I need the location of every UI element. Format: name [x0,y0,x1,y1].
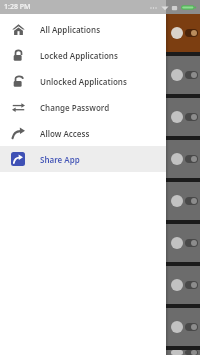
button[interactable]: Toggle lock [0,350,200,355]
other: Share App [11,152,25,166]
button[interactable]: Change Password [0,94,166,120]
staticText: 1:28 PM [4,2,31,12]
staticText: Locked Applications [40,50,118,61]
button[interactable]: Toggle lock [0,56,200,94]
button[interactable]: Allow Access [0,120,166,146]
button[interactable]: Toggle lock [0,182,200,220]
staticText: Unlocked Applications [40,76,127,87]
button[interactable]: Toggle lock [0,224,200,262]
button[interactable]: Toggle lock [0,98,200,136]
button[interactable]: Toggle lock [185,197,198,205]
button[interactable]: Toggle lock [185,155,198,163]
button[interactable]: Toggle lock [185,113,198,121]
button[interactable]: Toggle lock [0,266,200,304]
button[interactable]: Toggle lock [185,29,198,37]
button[interactable]: Toggle lock [185,239,198,247]
button[interactable]: All Applications [0,16,166,42]
button[interactable]: Toggle lock [0,308,200,346]
staticText: Allow Access [40,128,90,139]
button[interactable]: Toggle lock [185,350,198,355]
button[interactable]: Toggle lock [185,323,198,331]
button[interactable]: Locked Applications [0,42,166,68]
button[interactable]: Toggle lock [0,140,200,178]
staticText: Share App [40,154,80,165]
staticText: Change Password [40,102,110,113]
button[interactable]: Toggle lock [0,14,200,52]
button[interactable]: Toggle lock [185,281,198,289]
button[interactable]: Toggle lock [185,71,198,79]
button[interactable]: Unlocked Applications [0,68,166,94]
staticText: All Applications [40,24,101,35]
button[interactable]: Share App [0,146,166,172]
